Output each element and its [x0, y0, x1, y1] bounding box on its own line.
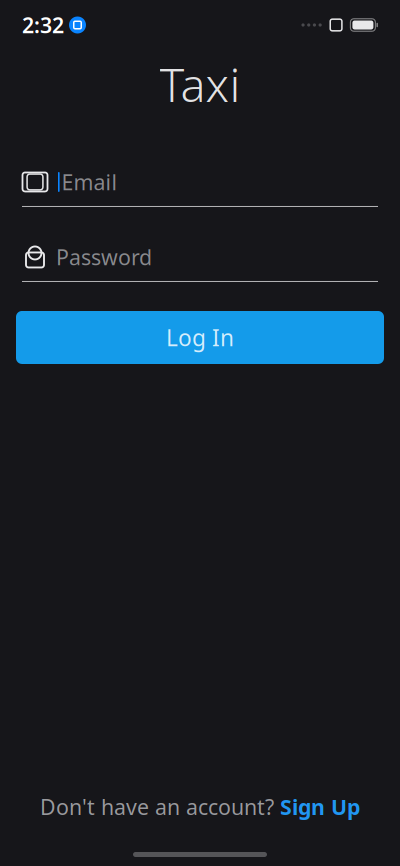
staticText: Don't have an account? [40, 793, 274, 821]
button[interactable]: Log In [16, 311, 384, 364]
staticText: Log In [166, 322, 234, 352]
staticText: Password [56, 243, 152, 271]
staticText: Sign Up [280, 793, 360, 821]
staticText: Taxi [159, 53, 240, 115]
button[interactable]: Don't have an account? [26, 787, 374, 827]
staticText: 2:32 [22, 11, 64, 39]
staticText: Email [62, 168, 118, 196]
